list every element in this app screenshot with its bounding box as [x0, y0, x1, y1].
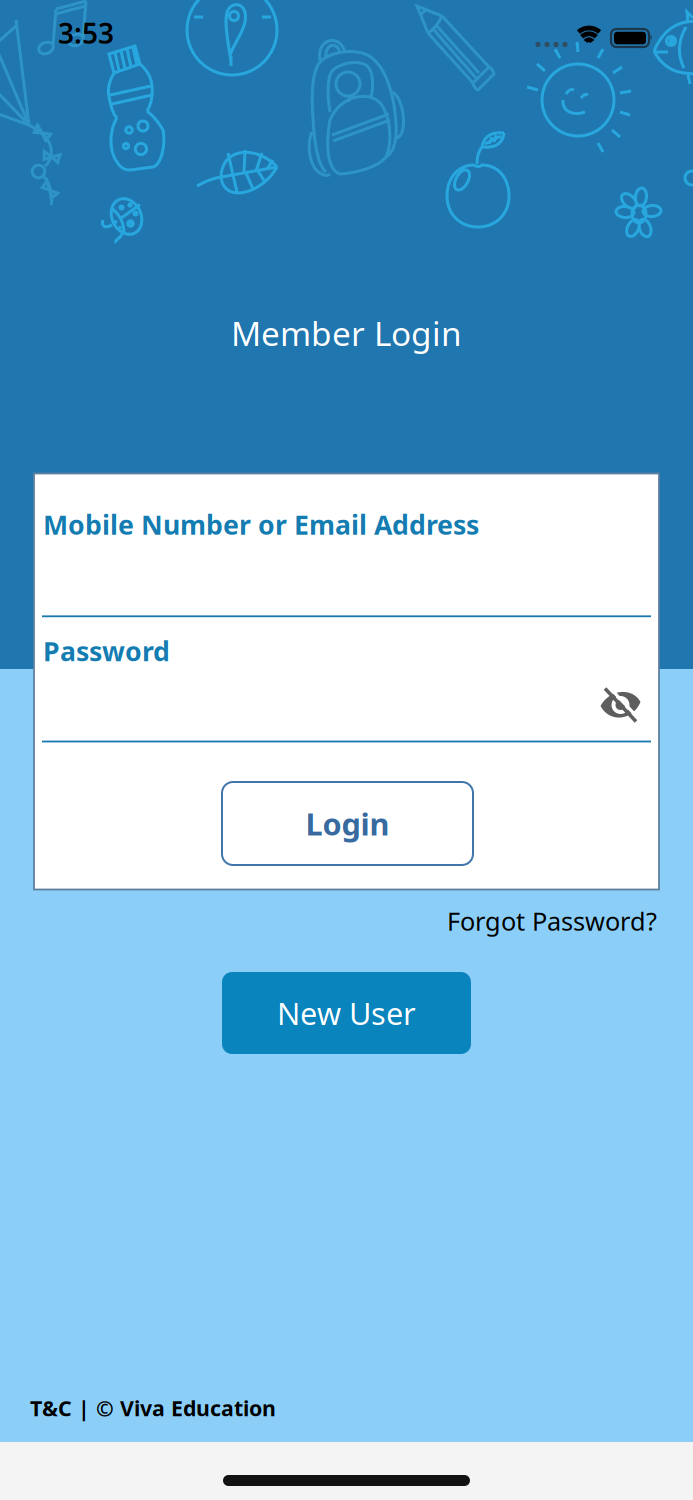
staticText: 3:53 [58, 14, 114, 52]
staticText: Forgot Password? [447, 904, 657, 938]
staticText: New User [277, 993, 416, 1033]
staticText: Password [43, 633, 170, 669]
button[interactable]: New User [222, 972, 471, 1054]
staticText: Login [305, 803, 389, 844]
staticText: Mobile Number or Email Address [43, 507, 479, 542]
staticText: T&C | © Viva Education [30, 1394, 276, 1422]
button[interactable]: T&C | © Viva Education [30, 1394, 276, 1422]
button[interactable]: Show password [598, 687, 642, 723]
button[interactable]: Login [222, 782, 473, 865]
button[interactable]: Forgot Password? [447, 904, 657, 938]
staticText: Member Login [231, 311, 462, 355]
